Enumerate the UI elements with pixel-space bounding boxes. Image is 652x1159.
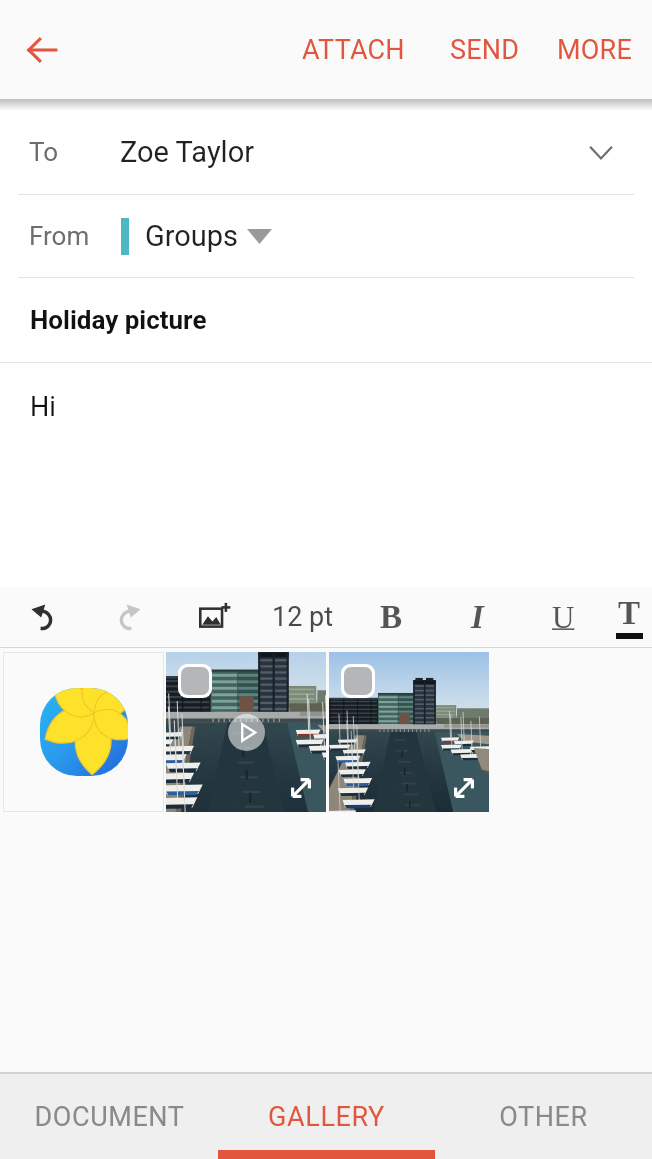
button[interactable]: I (434, 587, 520, 647)
button[interactable]: U (520, 587, 606, 647)
button[interactable]: 12 pt (258, 587, 348, 647)
button[interactable]: GALLERY (218, 1074, 435, 1159)
button[interactable]: SEND (442, 0, 528, 99)
button[interactable]: Undo (0, 587, 86, 647)
staticText: Holiday picture (30, 305, 207, 335)
button[interactable]: Holiday picture (0, 278, 652, 362)
staticText: 12 pt (272, 601, 334, 633)
button[interactable]: DOCUMENT (0, 1074, 218, 1159)
staticText: U (552, 600, 575, 634)
button[interactable]: OTHER (435, 1074, 652, 1159)
button[interactable]: Insert image (172, 587, 258, 647)
staticText: OTHER (499, 1101, 588, 1133)
button[interactable]: Attach photo (329, 652, 489, 812)
button[interactable]: Text colour (606, 587, 652, 647)
button[interactable]: Navigate up (0, 0, 86, 99)
staticText: Zoe Taylor (120, 135, 255, 169)
staticText: GALLERY (268, 1101, 385, 1133)
button[interactable]: MORE (549, 0, 640, 99)
button[interactable]: Redo (86, 587, 172, 647)
staticText: B (380, 599, 403, 636)
button[interactable]: Hi (0, 363, 652, 587)
staticText: I (471, 599, 484, 636)
button[interactable]: From (0, 195, 652, 277)
staticText: From (29, 221, 90, 251)
button[interactable]: Show more recipients (576, 127, 626, 177)
staticText: ATTACH (302, 34, 405, 66)
staticText: T (618, 595, 641, 632)
button[interactable]: Open Gallery app (3, 652, 164, 812)
staticText: Groups (145, 219, 239, 253)
staticText: Hi (30, 391, 56, 423)
staticText: SEND (450, 34, 520, 66)
button[interactable]: Attach photo (166, 652, 326, 812)
staticText: DOCUMENT (34, 1101, 185, 1133)
button[interactable]: To (0, 110, 652, 194)
button[interactable]: B (348, 587, 434, 647)
staticText: MORE (557, 34, 632, 66)
staticText: To (29, 137, 59, 167)
button[interactable]: ATTACH (294, 0, 413, 99)
